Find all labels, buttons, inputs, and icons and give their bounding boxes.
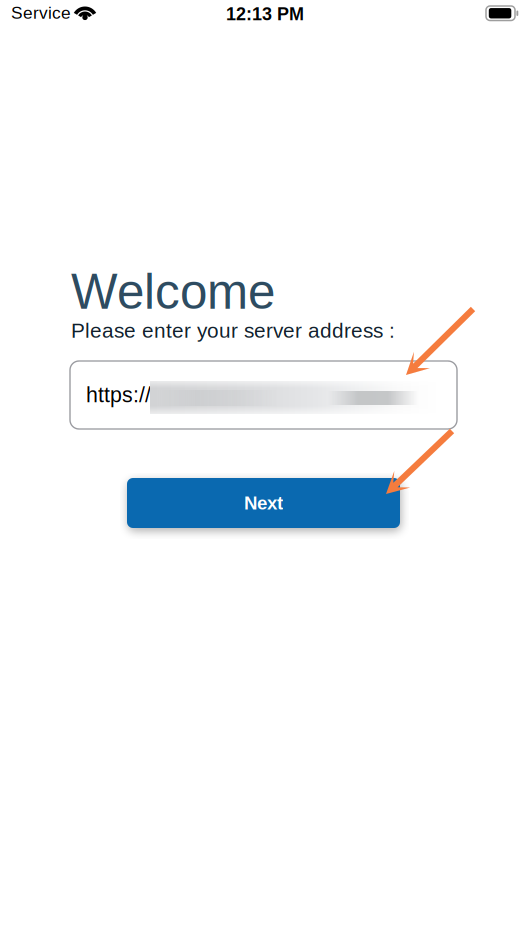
staticText: 12:13 PM	[226, 4, 304, 24]
staticText: Welcome	[71, 264, 275, 319]
staticText: https://	[86, 383, 151, 407]
button[interactable]: Next	[127, 478, 400, 528]
staticText: Please enter your server address :	[71, 319, 395, 342]
staticText: Service	[11, 3, 71, 22]
staticText: Next	[244, 493, 283, 513]
